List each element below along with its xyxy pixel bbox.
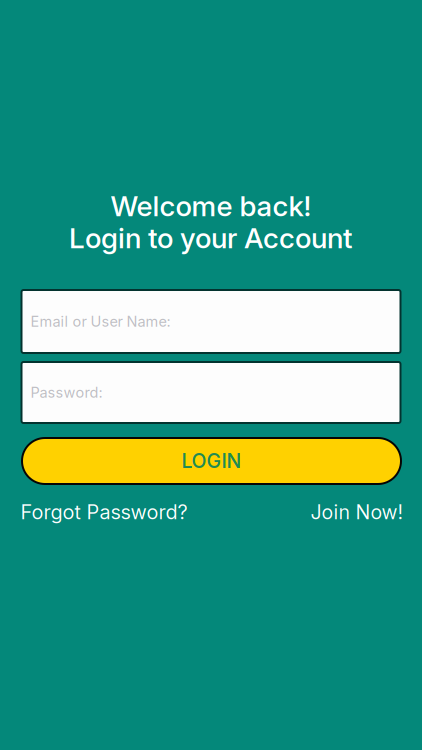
staticText: Forgot Password? bbox=[20, 500, 187, 524]
staticText: Login to your Account bbox=[69, 221, 353, 255]
button[interactable]: LOGIN bbox=[22, 438, 401, 484]
button[interactable]: Forgot Password? bbox=[20, 500, 187, 524]
staticText: Password: bbox=[30, 384, 102, 401]
staticText: LOGIN bbox=[181, 449, 241, 473]
button[interactable]: Join Now! bbox=[310, 500, 403, 524]
staticText: Welcome back! bbox=[110, 189, 311, 223]
staticText: Join Now! bbox=[310, 500, 403, 524]
button[interactable]: Email or User Name: bbox=[21, 290, 400, 353]
button[interactable]: Password: bbox=[21, 362, 400, 423]
staticText: Email or User Name: bbox=[30, 313, 170, 330]
